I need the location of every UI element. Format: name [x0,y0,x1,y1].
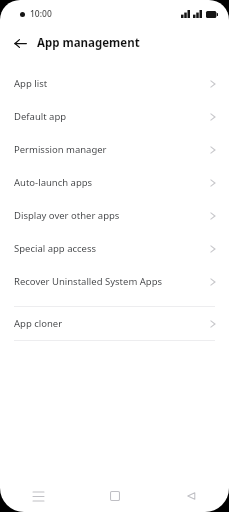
button[interactable]: Back [153,480,229,512]
staticText: App list [14,77,48,90]
staticText: Display over other apps [14,209,120,222]
button[interactable]: Recent apps [0,480,77,512]
button[interactable]: Permission manager [0,133,229,166]
button[interactable]: Special app access [0,232,229,265]
staticText: App cloner [14,317,63,330]
button[interactable]: Default app [0,100,229,133]
button[interactable]: Back [9,32,31,54]
button[interactable]: Auto-launch apps [0,166,229,199]
button[interactable]: Home [77,480,153,512]
button[interactable]: App list [0,67,229,100]
staticText: Permission manager [14,143,107,156]
staticText: Auto-launch apps [14,176,93,189]
button[interactable]: App cloner [0,307,229,340]
staticText: App management [37,35,140,51]
staticText: 10:00 [30,8,52,20]
button[interactable]: Recover Uninstalled System Apps [0,265,229,298]
staticText: Recover Uninstalled System Apps [14,275,163,288]
staticText: Default app [14,110,67,123]
staticText: Special app access [14,242,97,255]
button[interactable]: Display over other apps [0,199,229,232]
